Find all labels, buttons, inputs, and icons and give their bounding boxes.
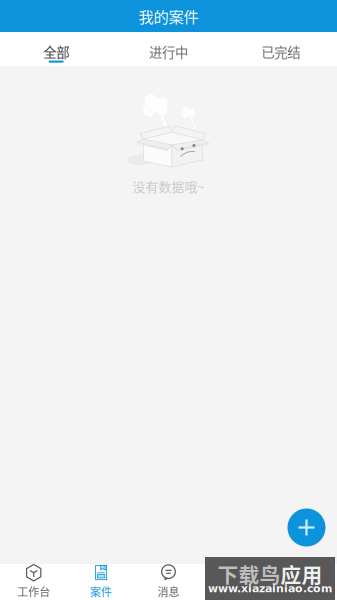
button[interactable]: 案件 [67, 563, 135, 600]
staticText: 没有数据哦~ [132, 177, 204, 195]
button[interactable]: 消息 [135, 563, 202, 600]
button[interactable]: 进行中 [112, 32, 225, 66]
staticText: 下载鸟 [217, 559, 280, 589]
staticText: 已完结 [261, 42, 300, 61]
staticText: 全部 [43, 42, 69, 61]
staticText: 消息 [157, 584, 179, 599]
staticText: 应用 [280, 559, 322, 589]
button[interactable]: 新建案件 [284, 505, 328, 549]
button[interactable]: 已完结 [225, 32, 337, 66]
button[interactable]: 全部 [0, 32, 112, 66]
button[interactable]: 工作台 [0, 563, 67, 600]
staticText: 案件 [90, 584, 112, 599]
staticText: 工作台 [17, 584, 50, 599]
staticText: 我的案件 [138, 5, 198, 27]
staticText: www.xiazainiao.com [208, 582, 332, 595]
staticText: 进行中 [149, 42, 188, 61]
